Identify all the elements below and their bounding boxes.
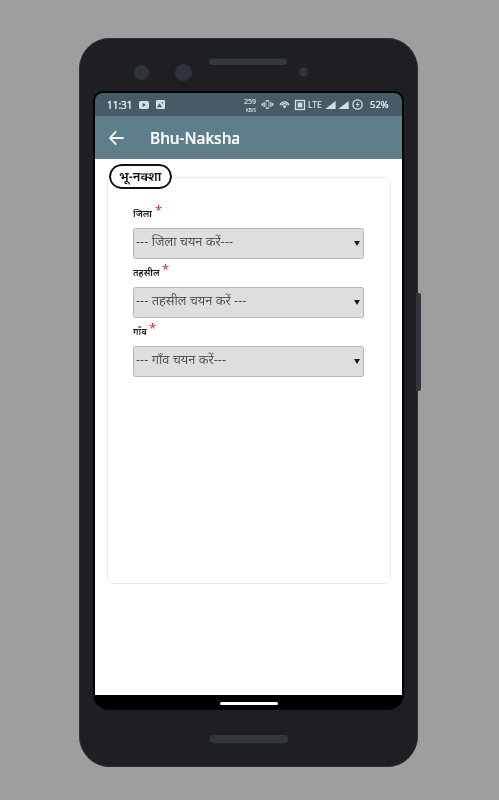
staticText: KB/S bbox=[246, 107, 256, 113]
staticText: * bbox=[149, 319, 157, 334]
staticText: 52% bbox=[370, 98, 389, 111]
staticText: --- जिला चयन करें--- bbox=[136, 232, 234, 249]
staticText: भू-नक्शा bbox=[119, 168, 162, 185]
staticText: --- तहसील चयन करें --- bbox=[136, 291, 247, 308]
staticText: Bhu-Naksha bbox=[150, 127, 241, 148]
button[interactable]: Back bbox=[95, 116, 137, 159]
staticText: LTE bbox=[308, 99, 322, 111]
button[interactable]: --- जिला चयन करें--- bbox=[133, 228, 364, 259]
staticText: गाँव bbox=[133, 325, 147, 337]
staticText: * bbox=[162, 260, 170, 275]
staticText: * bbox=[155, 201, 163, 216]
button[interactable]: --- तहसील चयन करें --- bbox=[133, 287, 364, 318]
staticText: 259 bbox=[244, 97, 257, 107]
staticText: --- गाँव चयन करें--- bbox=[136, 350, 227, 367]
staticText: तहसील bbox=[133, 266, 160, 278]
staticText: जिला bbox=[133, 207, 153, 219]
staticText: 11:31 bbox=[107, 98, 133, 112]
button[interactable]: --- गाँव चयन करें--- bbox=[133, 346, 364, 377]
